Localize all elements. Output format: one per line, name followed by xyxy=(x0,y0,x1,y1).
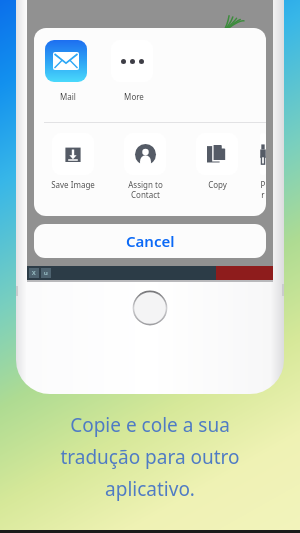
staticText: tradução para outro xyxy=(60,444,240,470)
staticText: X xyxy=(32,269,36,277)
staticText: More xyxy=(124,91,144,102)
staticText: Mail xyxy=(60,91,76,102)
button[interactable]: Assign to Contact xyxy=(116,133,174,200)
staticText: u xyxy=(44,269,48,277)
button[interactable]: Home xyxy=(132,290,168,326)
button[interactable]: Save Image xyxy=(44,133,102,190)
staticText: Copie e cole a sua xyxy=(70,412,230,438)
button[interactable]: Mail xyxy=(44,40,92,102)
button[interactable]: Cancel xyxy=(34,224,266,258)
staticText: Pr xyxy=(260,179,266,200)
button[interactable]: Pr xyxy=(260,133,266,200)
staticText: aplicativo. xyxy=(105,476,195,502)
staticText: Save Image xyxy=(51,179,95,190)
staticText: Assign to Contact xyxy=(128,179,163,200)
staticText: Cancel xyxy=(126,231,175,251)
button[interactable]: More xyxy=(110,40,158,102)
button[interactable]: Copy xyxy=(188,133,246,190)
staticText: Copy xyxy=(208,179,227,190)
